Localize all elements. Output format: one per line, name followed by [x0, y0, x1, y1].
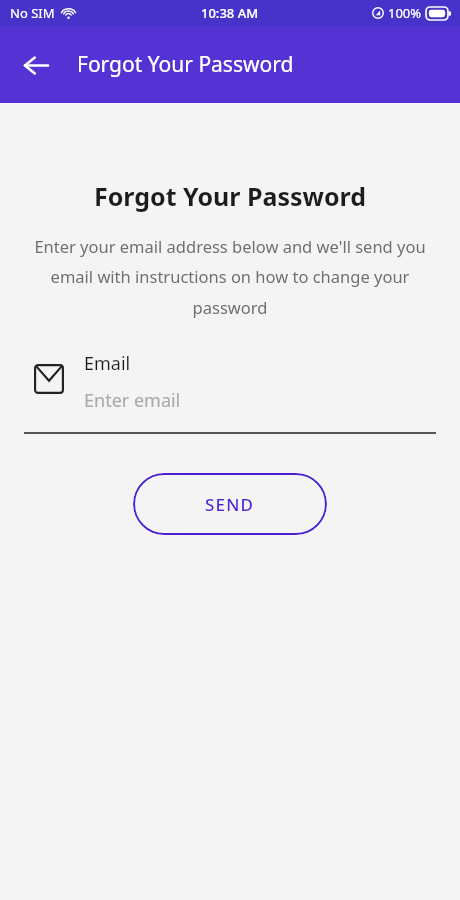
- button[interactable]: Email: [24, 351, 436, 413]
- staticText: 100%: [388, 4, 422, 22]
- staticText: Enter email: [84, 388, 181, 413]
- button[interactable]: Back: [12, 41, 60, 89]
- staticText: SEND: [205, 493, 255, 516]
- staticText: Enter your email address below and we'll…: [16, 235, 444, 319]
- staticText: 10:38 AM: [201, 4, 259, 22]
- staticText: No SIM: [10, 4, 55, 22]
- staticText: Forgot Your Password: [77, 50, 294, 79]
- button[interactable]: SEND: [133, 473, 327, 535]
- staticText: Forgot Your Password: [0, 179, 460, 213]
- staticText: Email: [84, 351, 131, 376]
